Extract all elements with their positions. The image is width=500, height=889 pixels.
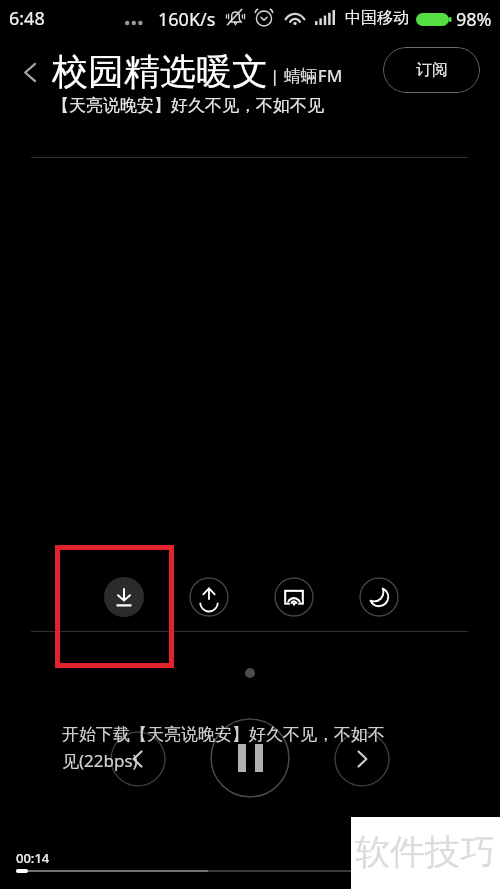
staticText: 中国移动 [345,8,409,28]
staticText: 订阅 [416,60,448,80]
button[interactable]: Previous [110,731,166,787]
staticText: 校园精选暖文 [52,49,268,94]
staticText: 160K/s [158,7,216,32]
button[interactable]: 订阅 [383,47,480,93]
button[interactable]: Pause [210,718,290,798]
button[interactable]: Download [104,577,144,617]
staticText: 6:48 [9,6,45,31]
button[interactable]: Next [334,731,390,787]
staticText: 【天亮说晚安】好久不见，不如不见 [52,95,324,116]
button[interactable]: Share [189,577,229,617]
staticText: 开始下载【天亮说晚安】好久不见，不如不见(22bps) [62,724,399,772]
staticText: 00:14 [16,849,50,867]
staticText: | 蜻蜽FM [270,64,343,87]
button[interactable]: Back [13,55,47,89]
staticText: 98% [456,7,492,32]
button[interactable]: Cast [274,577,314,617]
button[interactable]: Sleep timer [359,577,399,617]
staticText: 软件技巧 [355,830,495,874]
